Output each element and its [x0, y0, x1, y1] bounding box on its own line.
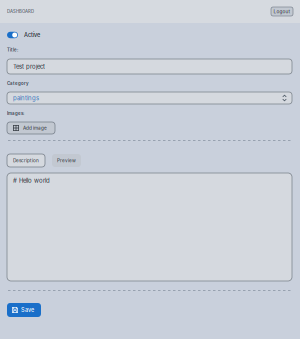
- staticText: Description: [13, 158, 39, 163]
- staticText: Test project: [13, 63, 45, 70]
- staticText: Add image: [23, 125, 47, 131]
- button[interactable]: Preview: [52, 154, 81, 167]
- button[interactable]: Description: [7, 154, 45, 167]
- button[interactable]: Save: [7, 303, 41, 317]
- staticText: Logout: [273, 9, 290, 14]
- staticText: # Hello world: [13, 177, 50, 184]
- button[interactable]: Active toggle: [7, 31, 18, 38]
- staticText: Preview: [57, 158, 76, 163]
- staticText: paintings: [13, 94, 39, 102]
- staticText: Active: [24, 32, 40, 38]
- staticText: Category: [7, 81, 29, 86]
- staticText: Images:: [7, 111, 24, 116]
- button[interactable]: Add image: [7, 122, 55, 134]
- staticText: Save: [21, 307, 34, 313]
- staticText: Title:: [7, 47, 18, 53]
- button[interactable]: Logout: [271, 7, 293, 16]
- staticText: DASHBOARD: [7, 9, 34, 14]
